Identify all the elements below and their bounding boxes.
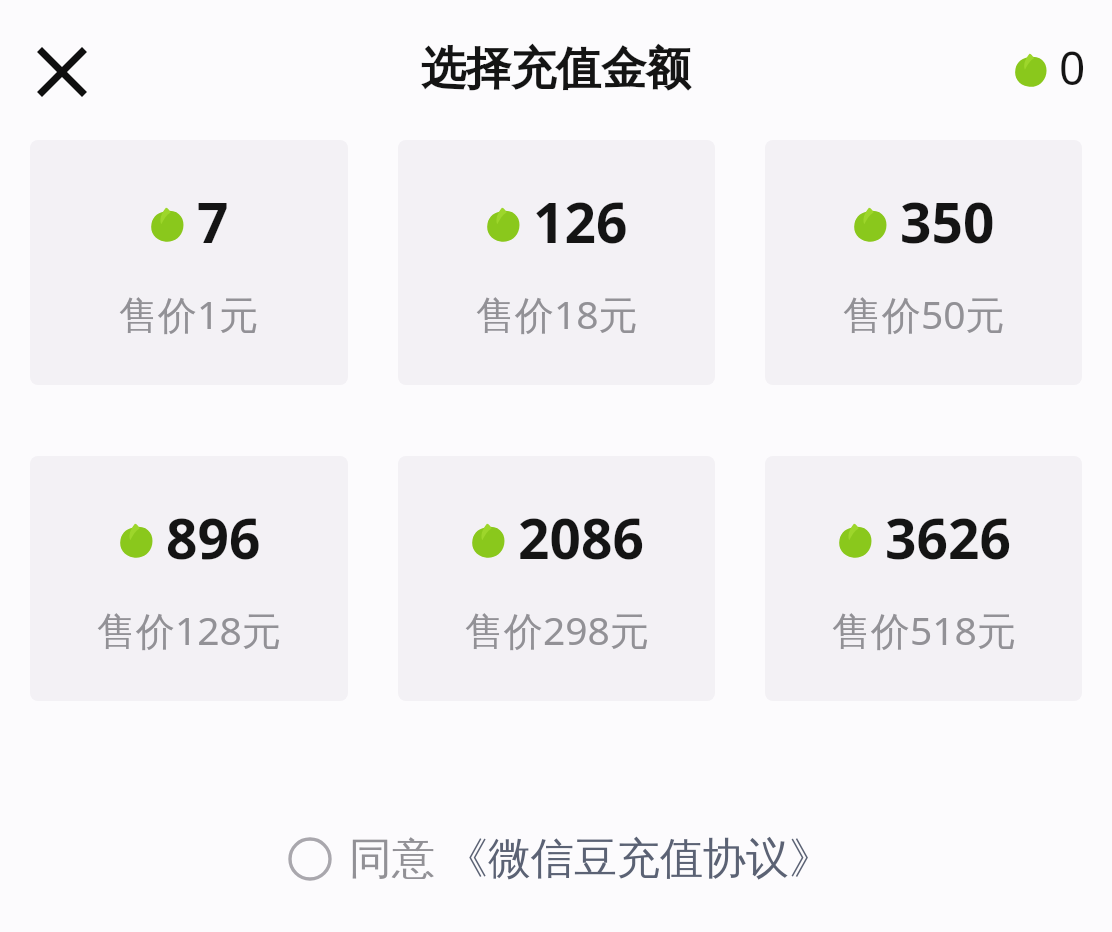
button[interactable]: 350 [765, 140, 1082, 385]
staticText: 选择充值金额 [421, 41, 691, 98]
staticText: 售价1元 [119, 287, 259, 340]
staticText: 7 [197, 184, 229, 259]
staticText: 售价50元 [843, 287, 1005, 340]
staticText: 126 [533, 184, 628, 259]
button[interactable]: 0 [1013, 36, 1086, 99]
staticText: 350 [900, 184, 995, 259]
staticText: 售价128元 [97, 603, 281, 656]
staticText: 售价298元 [465, 603, 649, 656]
button[interactable]: Agree [281, 826, 441, 892]
button[interactable]: 2086 [398, 456, 715, 701]
button[interactable]: 7 [30, 140, 348, 385]
button[interactable]: 《微信豆充值协议》 [445, 826, 832, 892]
staticText: 售价518元 [832, 603, 1016, 656]
staticText: 896 [166, 500, 261, 575]
button[interactable]: 126 [398, 140, 715, 385]
button[interactable]: 896 [30, 456, 348, 701]
staticText: 售价18元 [476, 287, 638, 340]
staticText: 0 [1059, 36, 1086, 99]
button[interactable]: 3626 [765, 456, 1082, 701]
staticText: 2086 [518, 500, 644, 575]
staticText: 3626 [885, 500, 1011, 575]
other: Agree [287, 836, 333, 882]
staticText: 同意 [349, 832, 435, 886]
button[interactable]: Close [22, 32, 102, 112]
